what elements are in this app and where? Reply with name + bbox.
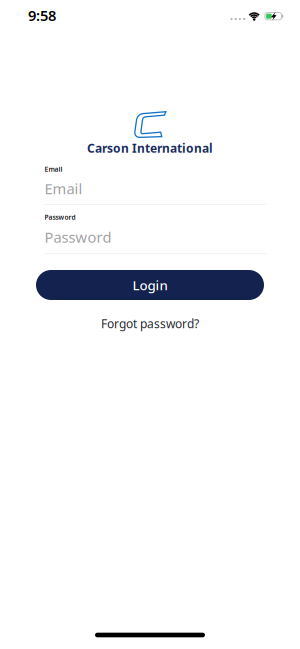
staticText: Forgot password?	[101, 315, 199, 331]
button[interactable]: Email	[44, 163, 266, 209]
button[interactable]: Password	[44, 211, 266, 257]
staticText: Email	[44, 165, 62, 174]
staticText: Login	[132, 276, 167, 294]
staticText: Password	[44, 213, 75, 222]
staticText: Password	[44, 227, 111, 247]
button[interactable]: Login	[36, 270, 264, 300]
staticText: Carson International	[87, 140, 213, 156]
button[interactable]: Forgot password?	[101, 315, 199, 331]
staticText: 9:58	[28, 6, 56, 25]
staticText: Email	[44, 179, 82, 198]
